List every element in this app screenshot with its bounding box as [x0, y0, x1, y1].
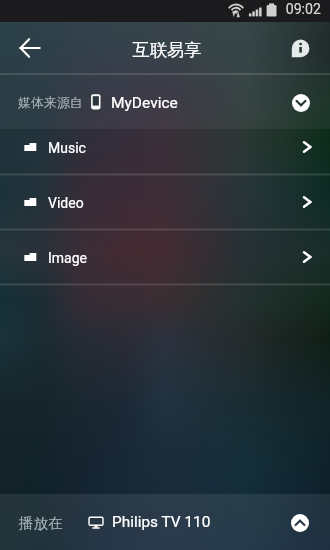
staticText: MyDevice — [111, 94, 178, 112]
staticText: Philips TV 110 — [112, 513, 211, 531]
button[interactable]: Video — [0, 175, 330, 230]
staticText: 媒体来源自 — [18, 95, 83, 111]
staticText: 播放在 — [19, 514, 63, 532]
button[interactable]: Back — [12, 30, 48, 66]
button[interactable]: Change media source — [292, 94, 310, 112]
button[interactable]: Image — [0, 230, 330, 285]
staticText: Music — [48, 140, 86, 156]
button[interactable]: Information — [285, 33, 316, 64]
button[interactable] — [0, 494, 330, 550]
staticText: Image — [48, 250, 87, 266]
staticText: Video — [48, 195, 84, 211]
button[interactable]: Music — [0, 129, 330, 175]
button[interactable]: Expand player — [291, 514, 309, 532]
staticText: 互联易享 — [132, 39, 202, 61]
staticText: 09:02 — [285, 1, 321, 18]
button[interactable] — [0, 74, 330, 129]
